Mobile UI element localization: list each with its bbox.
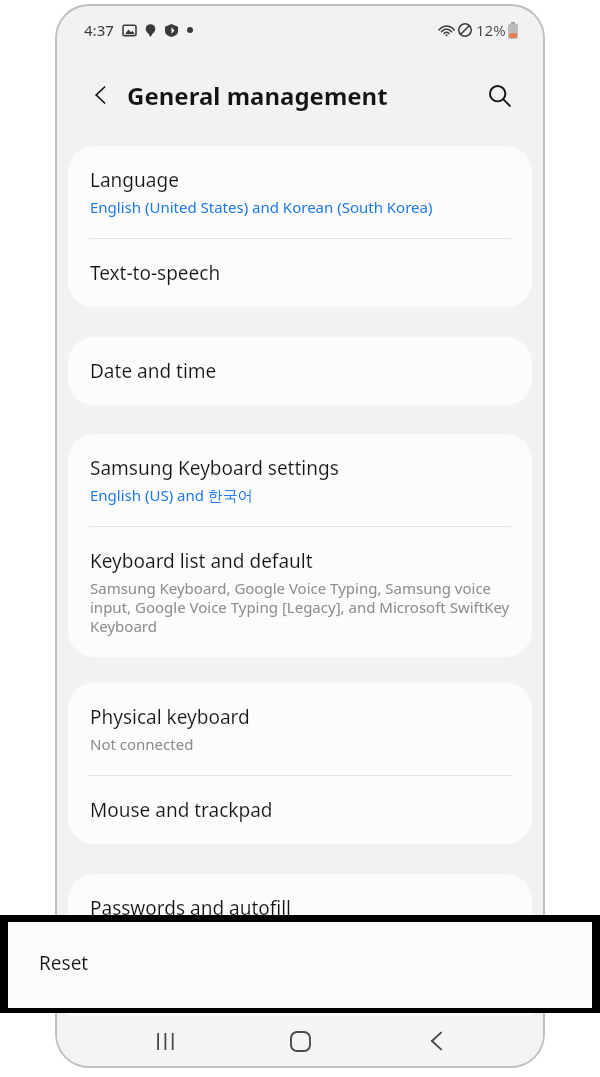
staticText: Language (90, 167, 179, 193)
staticText: Physical keyboard (90, 704, 250, 730)
button[interactable]: Back (79, 73, 123, 117)
staticText: General management (127, 79, 388, 112)
staticText: Reset (90, 993, 140, 1019)
staticText: Keyboard list and default (90, 548, 313, 574)
staticText: 12% (476, 20, 506, 40)
button[interactable]: Keyboard list and default (68, 527, 532, 657)
staticText: Samsung Keyboard settings (90, 455, 339, 481)
button[interactable]: Mouse and trackpad (68, 776, 532, 844)
button[interactable]: Reset (8, 922, 592, 1008)
staticText: Mouse and trackpad (90, 797, 273, 823)
button[interactable]: Back (408, 1016, 464, 1066)
staticText: Samsung Keyboard, Google Voice Typing, S… (90, 578, 510, 636)
button[interactable]: Passwords and autofill (68, 874, 532, 942)
button[interactable]: Reset (68, 972, 532, 1040)
staticText: Text-to-speech (90, 260, 221, 286)
button[interactable]: Physical keyboard (68, 683, 532, 775)
staticText: 4:37 (84, 20, 114, 40)
staticText: Reset (39, 950, 89, 976)
button[interactable]: Language (68, 146, 532, 238)
staticText: English (US) and 한국어 (90, 485, 253, 505)
button[interactable]: Recents (137, 1016, 193, 1066)
button[interactable]: Samsung Keyboard settings (68, 434, 532, 526)
staticText: Not connected (90, 734, 194, 754)
staticText: Passwords and autofill (90, 895, 292, 921)
button[interactable]: Home (272, 1016, 328, 1066)
button[interactable]: Date and time (68, 337, 532, 405)
button[interactable]: Text-to-speech (68, 239, 532, 307)
staticText: Date and time (90, 358, 217, 384)
staticText: English (United States) and Korean (Sout… (90, 197, 433, 217)
button[interactable]: Search (477, 73, 521, 117)
